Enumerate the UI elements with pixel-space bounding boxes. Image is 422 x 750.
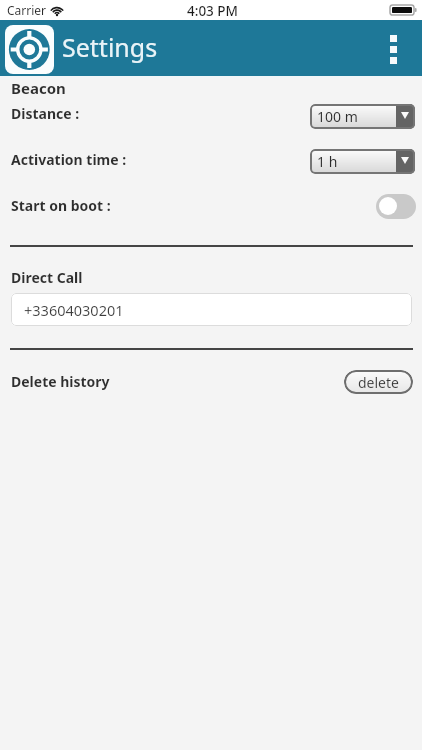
staticText: Settings <box>62 30 158 64</box>
staticText: Delete history <box>11 372 110 391</box>
staticText: Start on boot : <box>11 196 111 215</box>
staticText: Carrier <box>7 2 47 18</box>
staticText: Direct Call <box>11 268 83 287</box>
staticText: 100 m <box>317 107 358 126</box>
button[interactable]: 1 h <box>310 149 415 174</box>
button[interactable]: Start on boot toggle <box>376 194 416 219</box>
button[interactable]: delete <box>344 370 413 394</box>
staticText: Beacon <box>11 78 66 98</box>
button[interactable]: +33604030201 <box>11 293 412 326</box>
button[interactable]: 100 m <box>310 104 415 129</box>
button[interactable]: More options <box>380 22 406 76</box>
staticText: delete <box>358 373 399 392</box>
staticText: +33604030201 <box>24 300 124 320</box>
staticText: Activation time : <box>11 150 127 169</box>
staticText: Distance : <box>11 104 80 123</box>
staticText: 4:03 PM <box>187 2 238 20</box>
staticText: 1 h <box>317 152 338 171</box>
button[interactable]: App icon <box>5 25 54 74</box>
